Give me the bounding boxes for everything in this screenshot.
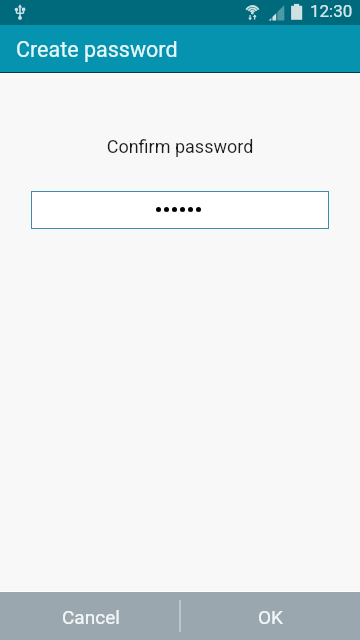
staticText: Create password [16,37,178,62]
button[interactable]: Cancel [0,592,179,640]
staticText: 12:30 [310,1,353,21]
staticText: OK [258,606,283,628]
staticText: Confirm password [0,136,360,157]
button[interactable]: Password entry field [31,191,329,229]
button[interactable]: OK [181,592,360,640]
staticText: Cancel [62,606,120,628]
